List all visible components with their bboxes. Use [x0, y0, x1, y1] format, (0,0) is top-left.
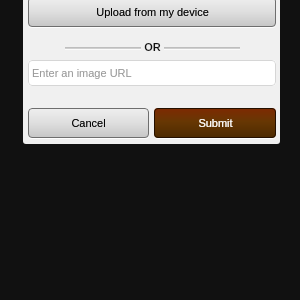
staticText: Upload from my device [96, 6, 209, 18]
button[interactable]: Upload from my device [28, 0, 276, 27]
staticText: Cancel [71, 117, 106, 129]
staticText: OR [144, 41, 161, 53]
staticText: Enter an image URL [32, 67, 132, 79]
button[interactable]: Submit [154, 108, 276, 138]
button[interactable]: Cancel [28, 108, 149, 138]
staticText: Upload from my device [96, 6, 209, 18]
staticText: Submit [198, 117, 233, 129]
staticText: Cancel [71, 117, 106, 129]
button[interactable]: Enter an image URL [28, 60, 276, 86]
